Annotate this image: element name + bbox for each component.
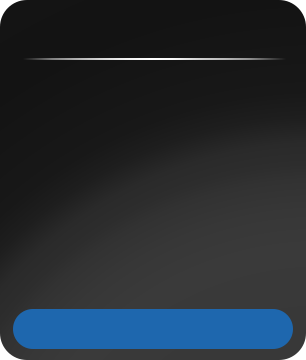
button[interactable]: Continue: [13, 309, 293, 349]
